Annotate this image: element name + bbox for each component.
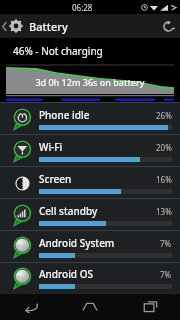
button[interactable]: Refresh [156,14,180,38]
staticText: Phone idle [39,108,156,122]
staticText: Screen [39,172,156,186]
staticText: Battery [29,19,68,34]
staticText: 13% [156,206,172,217]
button[interactable]: Screen [0,166,180,198]
staticText: 46% - Not charging [13,44,103,58]
staticText: Cell standby [39,204,156,218]
staticText: 7% [160,238,172,249]
staticText: 20% [156,142,172,153]
staticText: 16% [156,174,172,185]
staticText: Android System [39,236,160,250]
button[interactable]: Recent apps [120,293,180,320]
button[interactable]: Cell standby [0,198,180,230]
staticText: 06:28 [72,2,93,13]
button[interactable]: Android OS [0,262,180,293]
staticText: Android OS [39,267,160,281]
staticText: 7% [160,269,172,280]
button[interactable]: Home [60,293,120,320]
button[interactable]: Android System [0,230,180,262]
staticText: Wi-Fi [39,140,156,154]
staticText: 26% [156,110,172,121]
button[interactable]: Battery [0,14,74,38]
staticText: 3d 0h 12m 36s on battery [35,76,145,88]
button[interactable]: Back [0,293,60,320]
button[interactable]: Wi-Fi [0,134,180,166]
button[interactable]: Phone idle [0,102,180,134]
